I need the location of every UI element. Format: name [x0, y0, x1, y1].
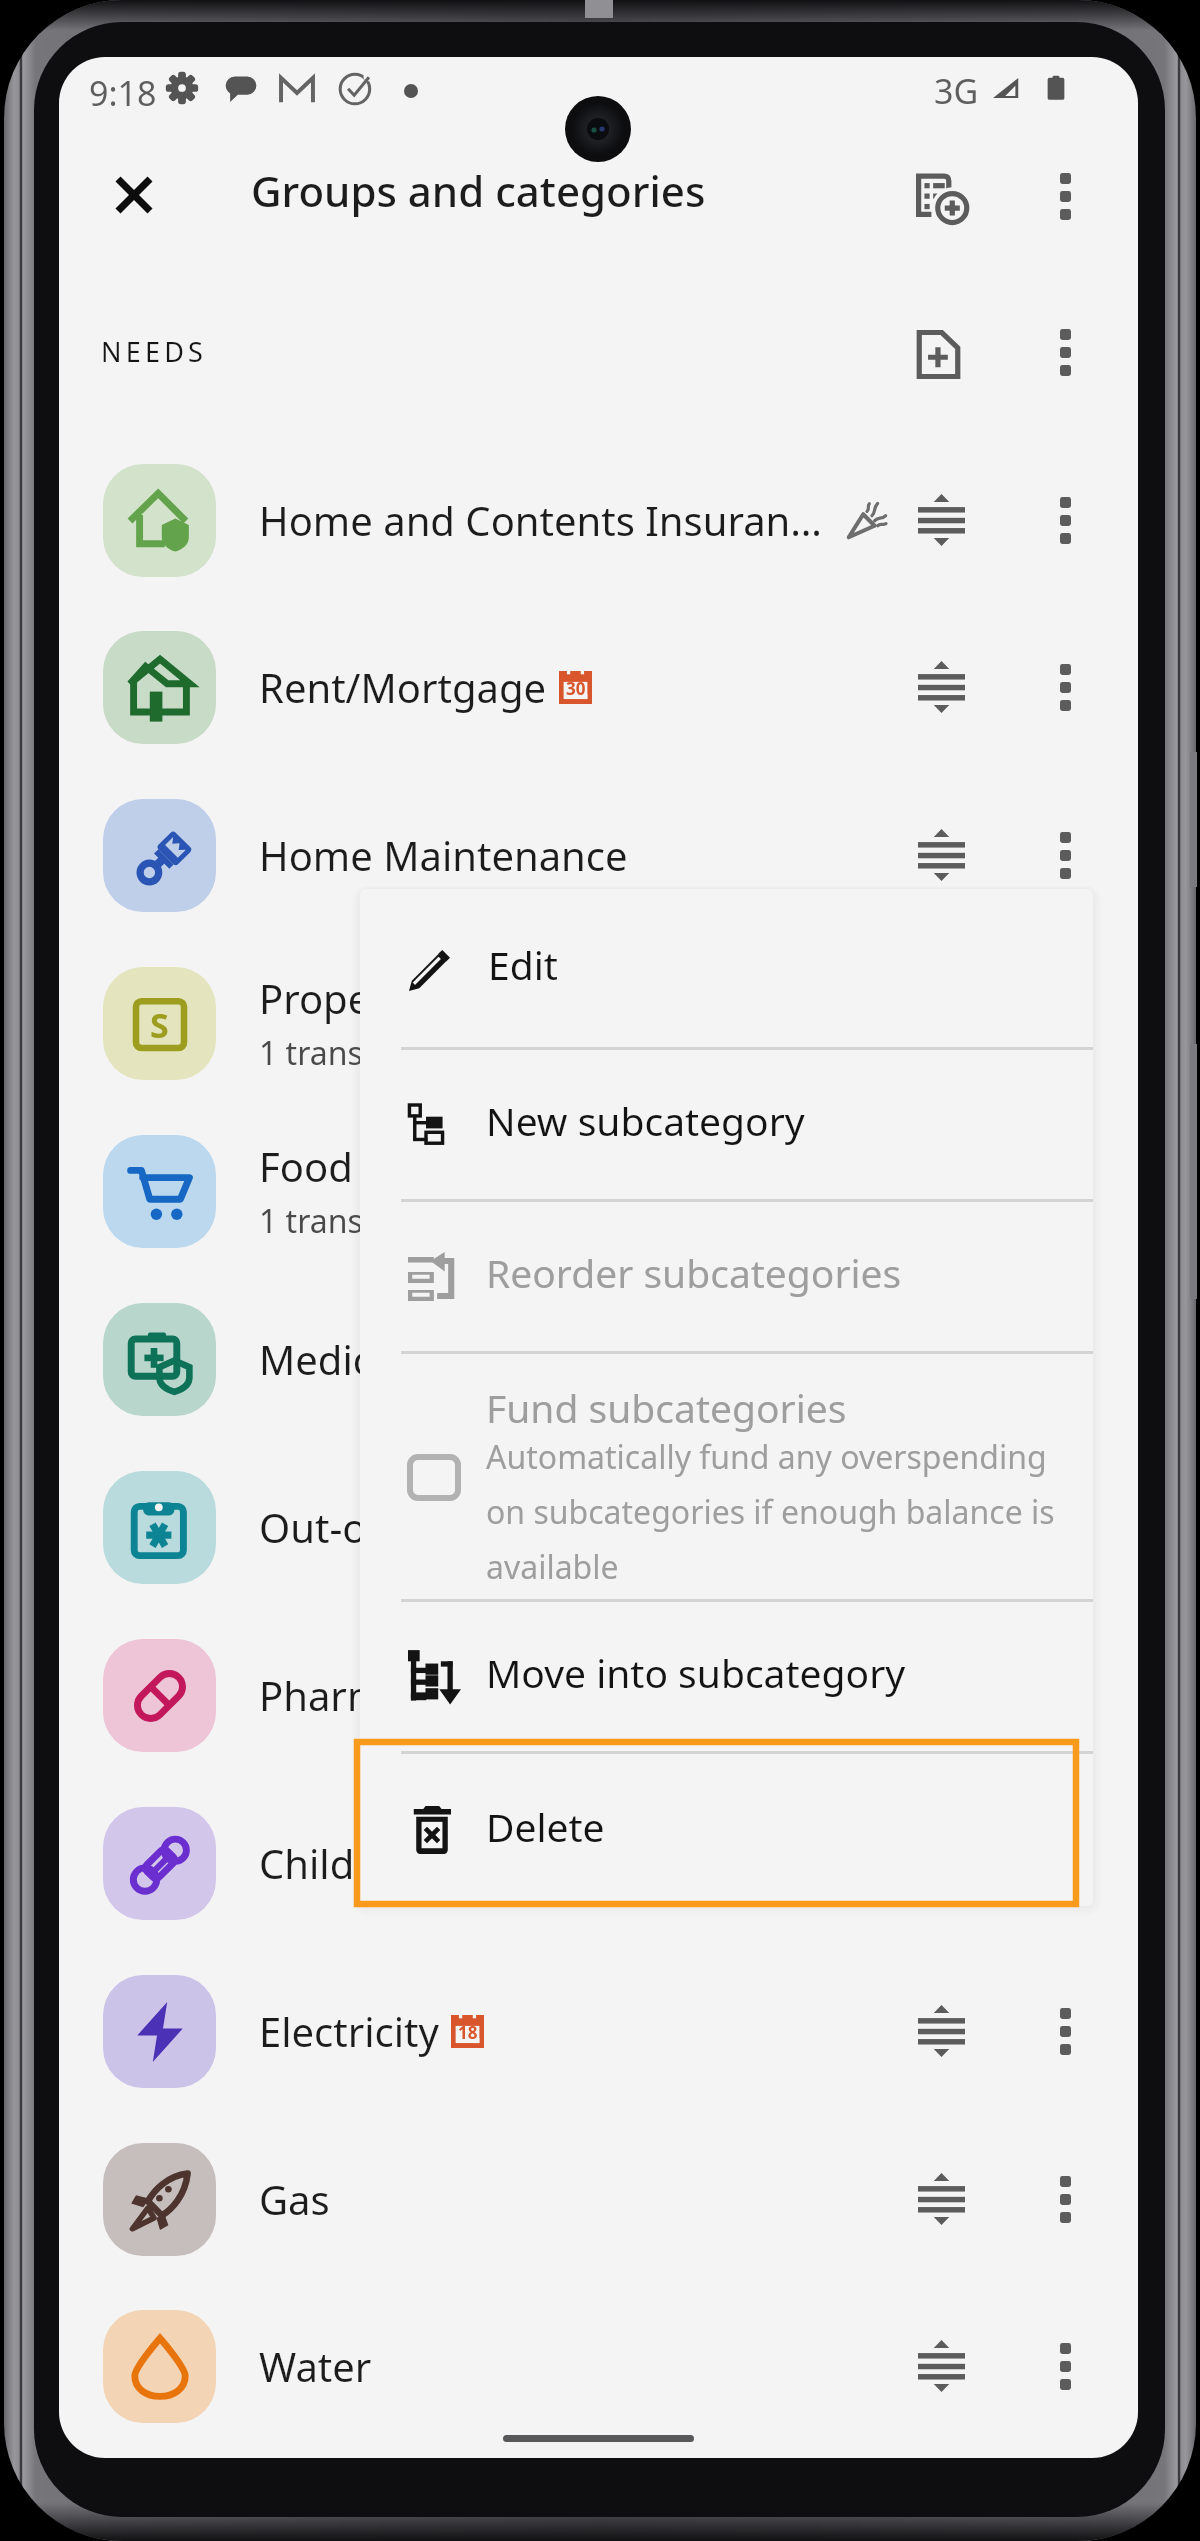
button[interactable]: Reorder: [893, 807, 989, 903]
button[interactable]: Reorder: [893, 2151, 989, 2247]
staticText: Electricity: [259, 2004, 439, 2058]
staticText: S: [150, 1002, 169, 1048]
button[interactable]: More options: [1017, 975, 1113, 1071]
staticText: New subcategory: [486, 1094, 805, 1147]
button[interactable]: More options: [1017, 1647, 1113, 1743]
button[interactable]: Reorder: [893, 1815, 989, 1911]
button[interactable]: Reorder: [893, 2318, 989, 2414]
button[interactable]: Out-o: [59, 1443, 1138, 1611]
staticText: 1 trans: [259, 1031, 363, 1075]
button[interactable]: More options: [1017, 1983, 1113, 2079]
staticText: Food: [259, 1139, 353, 1193]
button[interactable]: Delete: [360, 1754, 1093, 1906]
button[interactable]: New subcategory: [360, 1050, 1093, 1199]
button[interactable]: Reorder: [893, 975, 989, 1071]
staticText: Childc: [259, 1836, 374, 1890]
button[interactable]: New group: [898, 152, 988, 242]
staticText: 1 trans: [259, 1199, 363, 1243]
button[interactable]: Rent/Mortgage: [59, 603, 1138, 771]
button[interactable]: Reorder: [893, 639, 989, 735]
staticText: Water: [259, 2339, 372, 2393]
staticText: Groups and categories: [251, 162, 706, 219]
button[interactable]: More options: [1017, 2318, 1113, 2414]
button[interactable]: Reorder: [893, 472, 989, 568]
button[interactable]: Pharm: [59, 1611, 1138, 1779]
staticText: Automatically fund any overspending: [486, 1435, 1047, 1479]
button[interactable]: More options: [1017, 1311, 1113, 1407]
staticText: Out-o: [259, 1500, 367, 1554]
button[interactable]: S: [59, 939, 1138, 1107]
button[interactable]: Reorder: [893, 1311, 989, 1407]
button[interactable]: Move into subcategory: [360, 1602, 1093, 1751]
button[interactable]: Group options: [1020, 307, 1110, 397]
staticText: Prope: [259, 971, 371, 1025]
staticText: Home Maintenance: [259, 828, 628, 882]
button[interactable]: Edit: [360, 889, 1093, 1047]
button[interactable]: Water: [59, 2282, 1138, 2450]
button[interactable]: More options: [1017, 1479, 1113, 1575]
staticText: available: [486, 1545, 619, 1589]
button[interactable]: Close: [89, 150, 179, 240]
staticText: on subcategories if enough balance is: [486, 1490, 1055, 1534]
button[interactable]: Reorder: [893, 1143, 989, 1239]
button[interactable]: Fund subcategories: [360, 1354, 1093, 1599]
button[interactable]: Home and Contents Insuran…: [59, 436, 1138, 604]
button[interactable]: Food: [59, 1107, 1138, 1275]
button[interactable]: More options: [1020, 151, 1110, 241]
staticText: Rent/Mortgage: [259, 660, 547, 714]
button[interactable]: More options: [1017, 2151, 1113, 2247]
button[interactable]: Reorder: [893, 1479, 989, 1575]
button[interactable]: Gas: [59, 2115, 1138, 2283]
staticText: Pharm: [259, 1668, 385, 1722]
button[interactable]: Reorder: [893, 1983, 989, 2079]
staticText: Edit: [488, 938, 558, 991]
button[interactable]: More options: [1017, 807, 1113, 903]
button[interactable]: Electricity: [59, 1947, 1138, 2115]
staticText: NEEDS: [101, 333, 208, 370]
button[interactable]: More options: [1017, 1143, 1113, 1239]
staticText: 3G: [934, 68, 979, 114]
staticText: 9:18: [89, 70, 157, 116]
button[interactable]: More options: [1017, 1815, 1113, 1911]
staticText: Reorder subcategories: [486, 1246, 902, 1299]
button[interactable]: More options: [1017, 472, 1113, 568]
button[interactable]: New category: [893, 309, 983, 399]
staticText: 18: [458, 2021, 478, 2044]
button[interactable]: Home Maintenance: [59, 771, 1138, 939]
button[interactable]: Medic: [59, 1275, 1138, 1443]
staticText: Medic: [259, 1332, 372, 1386]
staticText: Delete: [486, 1800, 605, 1853]
staticText: 30: [566, 677, 586, 700]
staticText: Home and Contents Insuran…: [259, 493, 822, 547]
button[interactable]: Reorder subcategories: [360, 1202, 1093, 1351]
staticText: Fund subcategories: [486, 1381, 847, 1434]
staticText: Move into subcategory: [486, 1646, 906, 1699]
button[interactable]: More options: [1017, 639, 1113, 735]
button[interactable]: Childc: [59, 1779, 1138, 1947]
button[interactable]: Reorder: [893, 1647, 989, 1743]
staticText: Gas: [259, 2172, 330, 2226]
